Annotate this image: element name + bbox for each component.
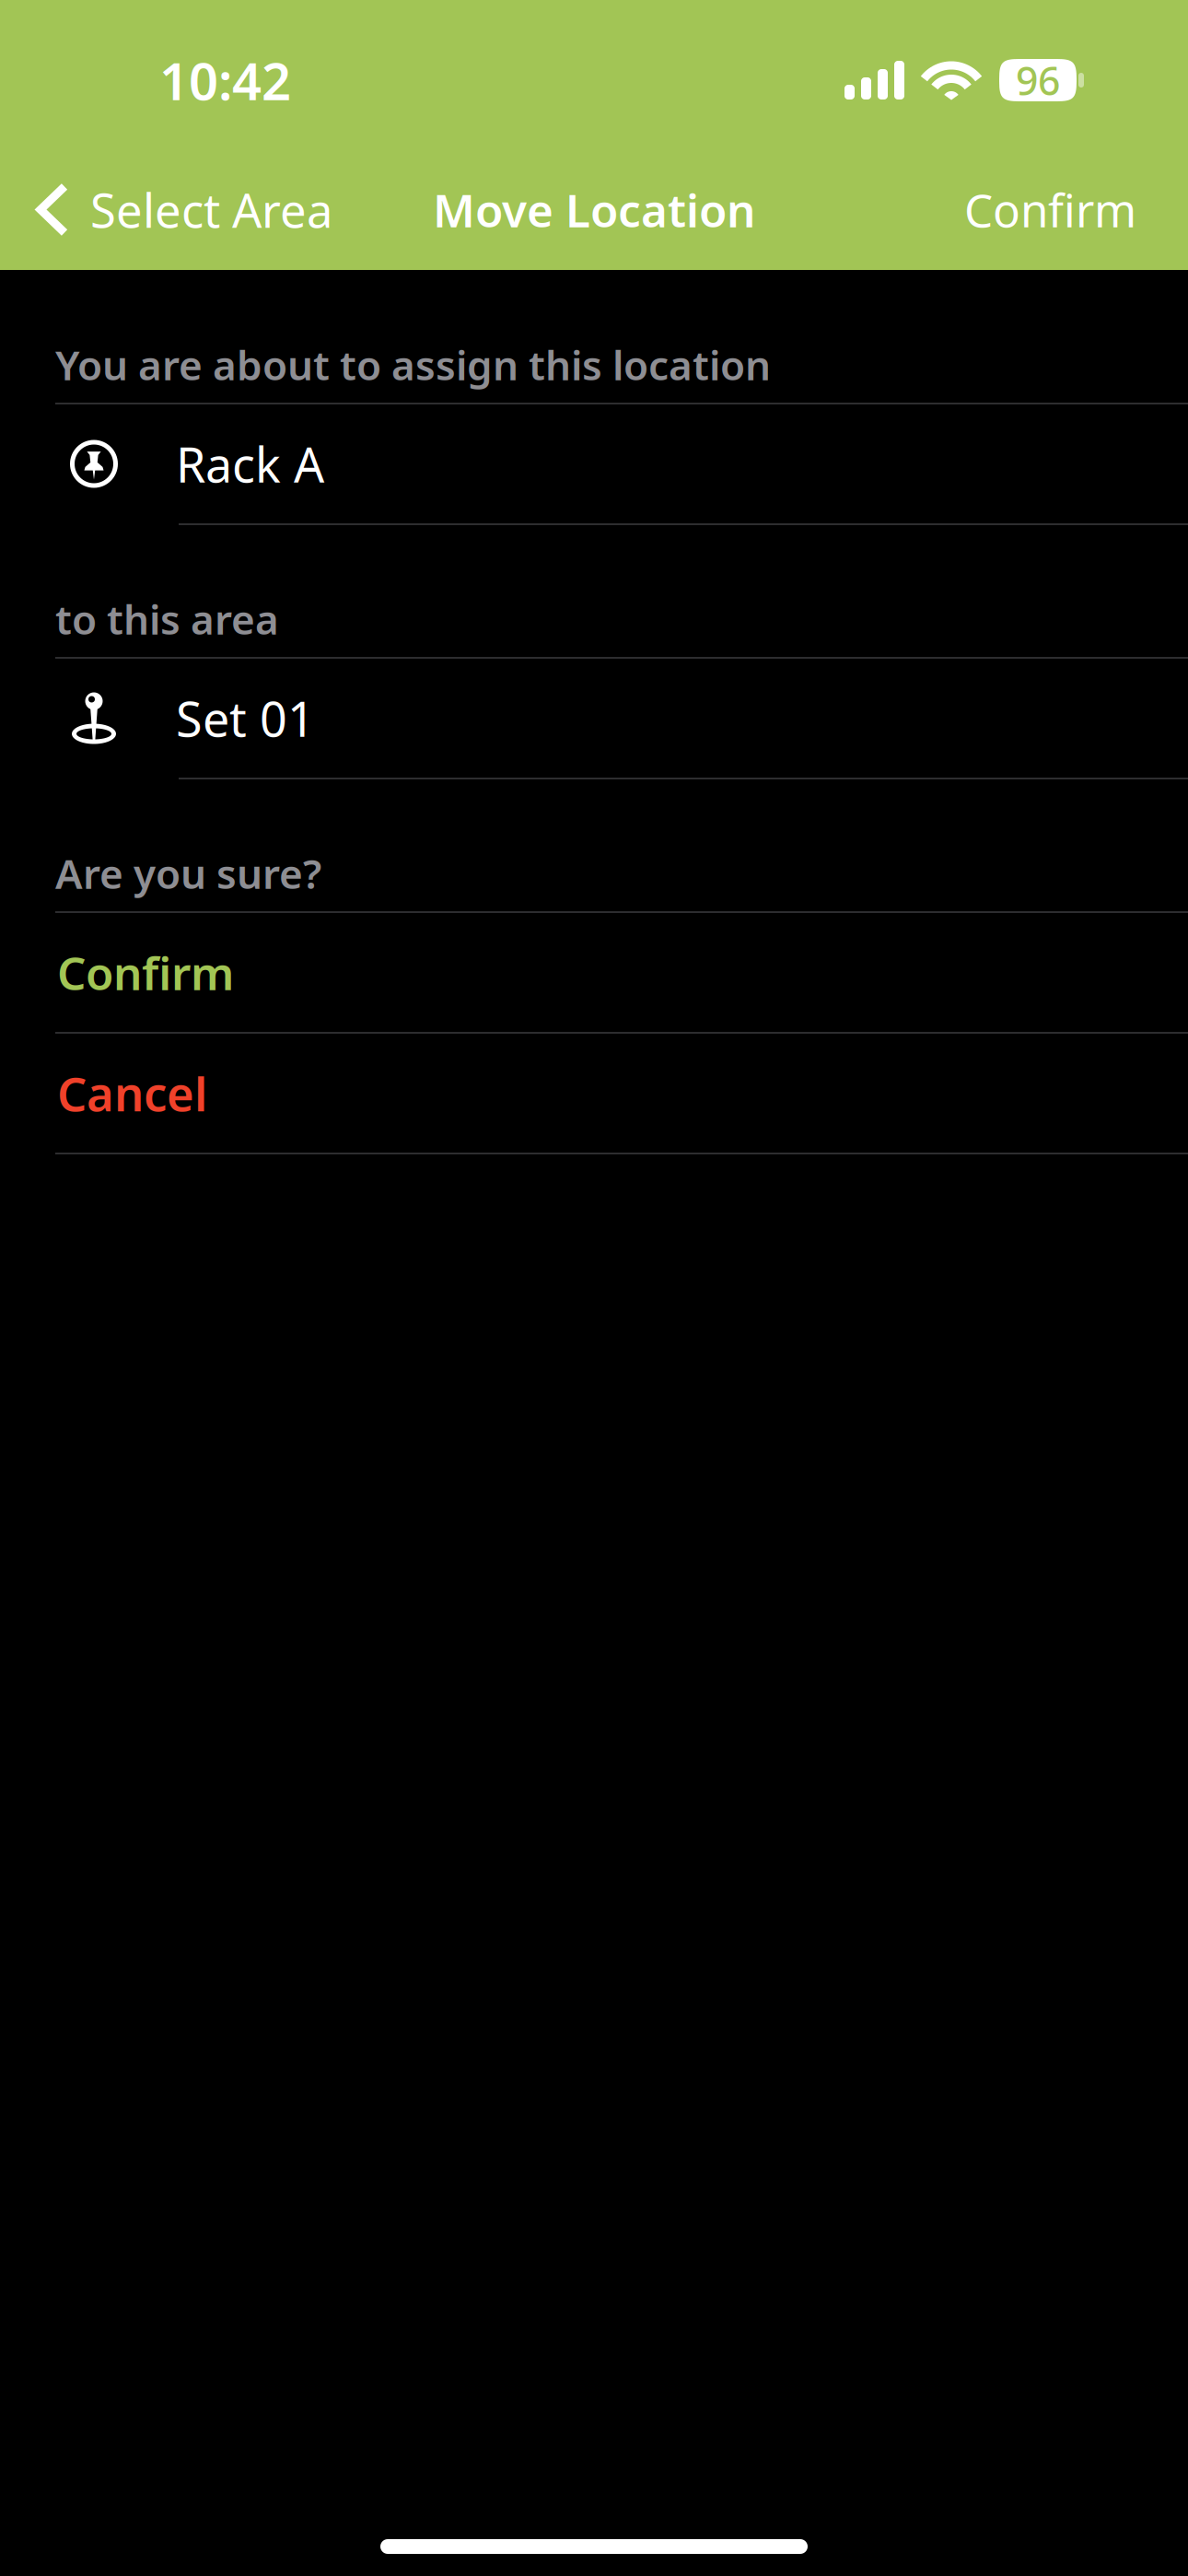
staticText: Rack A <box>176 432 324 496</box>
button[interactable]: Rack A <box>0 404 1188 523</box>
staticText: Cancel <box>57 1062 207 1124</box>
staticText: You are about to assign this location <box>55 338 771 392</box>
button[interactable]: Set 01 <box>0 659 1188 778</box>
staticText: to this area <box>55 592 279 646</box>
staticText: 10:42 <box>159 46 291 114</box>
staticText: Confirm <box>57 942 234 1003</box>
button[interactable]: Confirm <box>942 209 1188 210</box>
staticText: Are you sure? <box>55 846 321 900</box>
button[interactable]: Cancel <box>0 1034 1188 1153</box>
staticText: Move Location <box>433 179 755 240</box>
staticText: Confirm <box>964 179 1136 240</box>
staticText: Select Area <box>90 179 332 241</box>
staticText: 96 <box>1016 54 1060 106</box>
button[interactable]: Confirm <box>0 913 1188 1032</box>
staticText: Set 01 <box>176 686 315 750</box>
button[interactable]: Select Area <box>0 209 351 210</box>
